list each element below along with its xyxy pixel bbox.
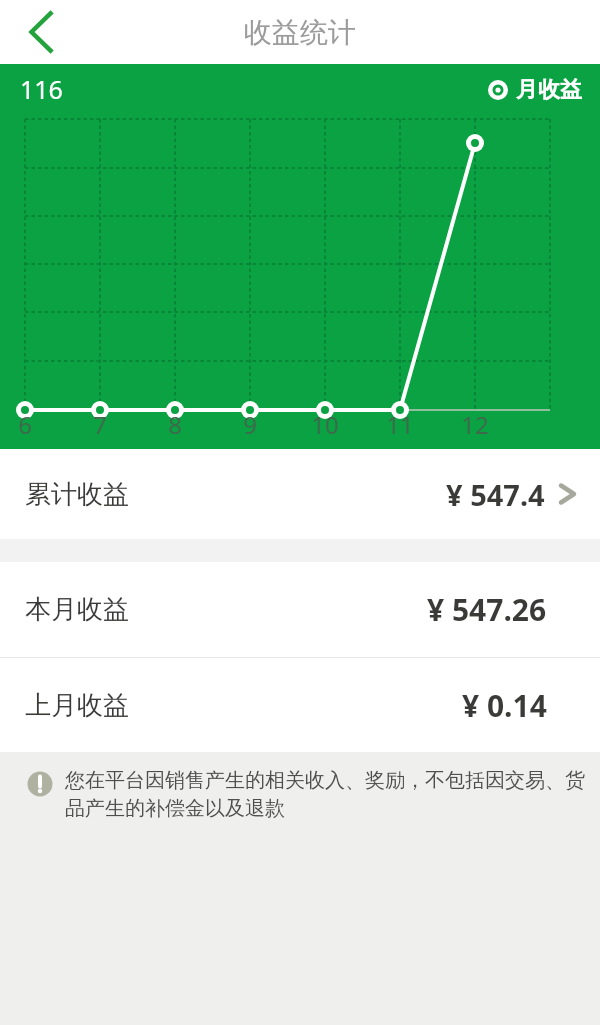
button[interactable]: 月收益 [488, 76, 582, 104]
button[interactable]: 本月收益 [0, 562, 600, 657]
staticText: 12 [461, 408, 489, 441]
staticText: 累计收益 [25, 478, 129, 511]
staticText: 您在平台因销售产生的相关收入、奖励，不包括因交易、货品产生的补偿金以及退款 [65, 768, 586, 821]
staticText: ¥ 547.26 [427, 589, 547, 630]
staticText: 6 [18, 408, 32, 441]
staticText: 月收益 [516, 76, 582, 104]
staticText: 本月收益 [25, 593, 129, 626]
staticText: 8 [168, 408, 182, 441]
staticText: 116 [20, 72, 63, 106]
staticText: ¥ 0.14 [462, 685, 547, 726]
staticText: 7 [93, 408, 107, 441]
staticText: 上月收益 [25, 689, 129, 722]
staticText: 11 [386, 408, 414, 441]
staticText: 9 [243, 408, 257, 441]
staticText: 10 [311, 408, 339, 441]
button[interactable]: 上月收益 [0, 658, 600, 752]
staticText: 收益统计 [244, 15, 356, 50]
button[interactable]: 累计收益 [0, 449, 600, 539]
staticText: ¥ 547.4 [446, 475, 545, 514]
button[interactable] [0, 0, 68, 64]
